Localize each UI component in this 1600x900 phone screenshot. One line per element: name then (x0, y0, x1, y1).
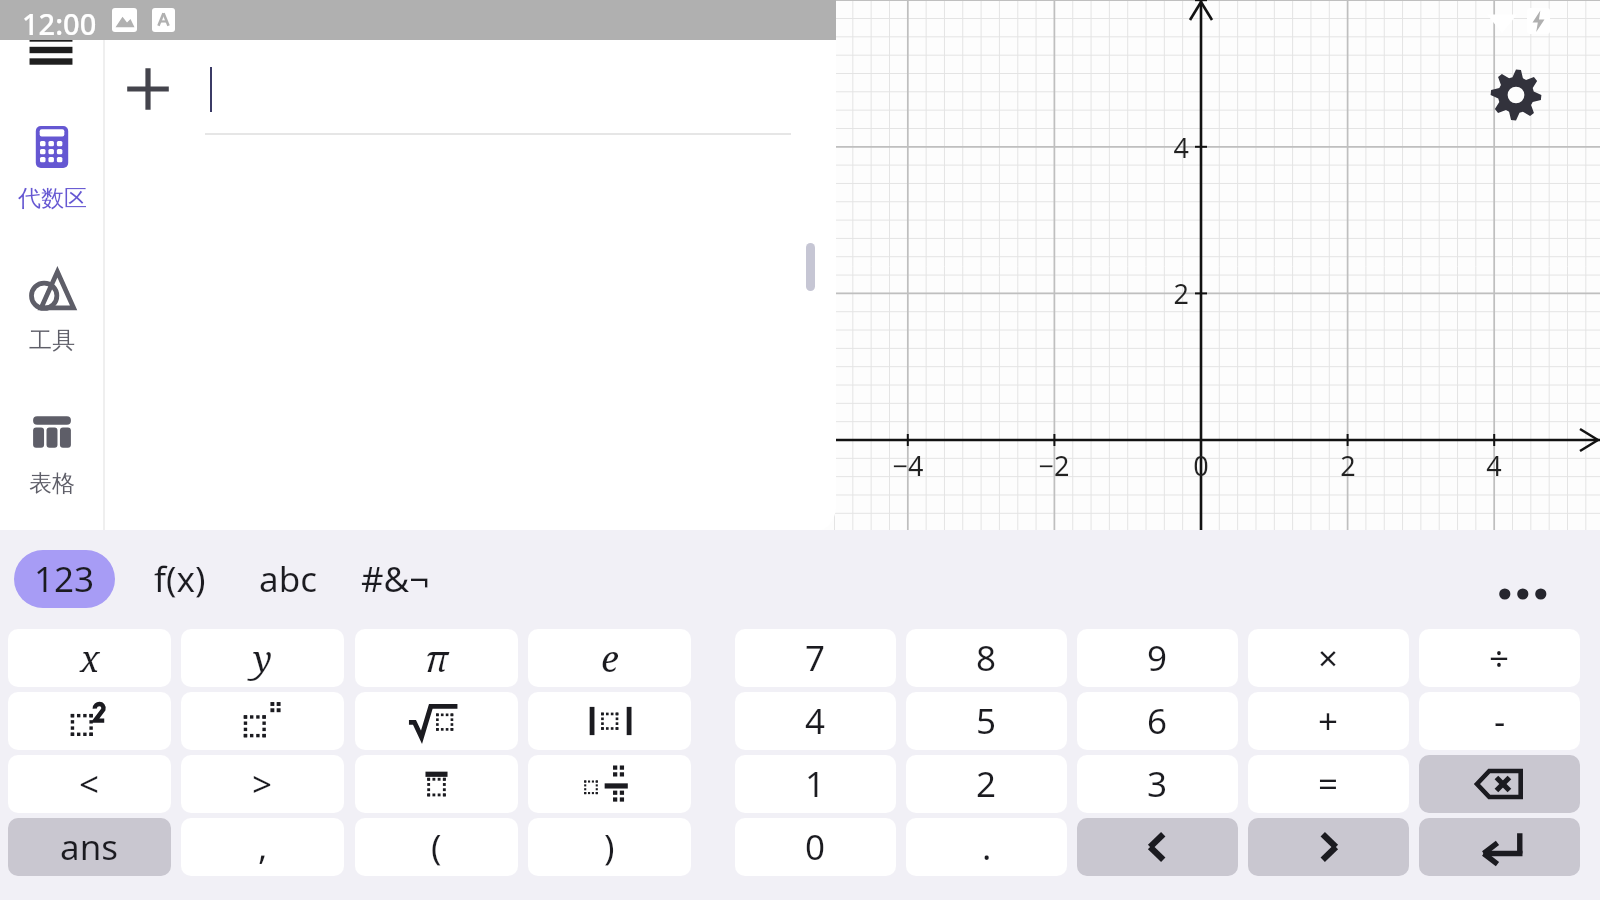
staticText: 工具 (29, 326, 75, 355)
button[interactable]: × (1248, 629, 1409, 687)
staticText: 0 (805, 823, 826, 871)
button[interactable]: 5 (906, 692, 1067, 750)
button[interactable]: Absolute value (528, 692, 691, 750)
staticText: f(x) (154, 555, 206, 603)
button[interactable]: 6 (1077, 692, 1238, 750)
button[interactable]: 2 (906, 755, 1067, 813)
staticText: −2 (1024, 447, 1084, 484)
staticText: . (982, 823, 992, 871)
staticText: 代数区 (18, 184, 87, 213)
button[interactable]: Settings (1489, 68, 1543, 122)
staticText: abc (259, 555, 317, 603)
staticText: 3 (1147, 760, 1168, 808)
staticText: 表格 (29, 469, 75, 498)
button[interactable]: > (181, 755, 344, 813)
staticText: 4 (805, 697, 826, 745)
button[interactable]: 4 (735, 692, 896, 750)
staticText: 9 (1147, 634, 1168, 682)
staticText: 2 (1129, 275, 1189, 312)
button[interactable]: ÷ (1419, 629, 1580, 687)
button[interactable]: - (1419, 692, 1580, 750)
button[interactable]: = (1248, 755, 1409, 813)
button[interactable]: Backspace (1419, 755, 1580, 813)
staticText: 2 (976, 760, 997, 808)
button[interactable]: Enter (1419, 818, 1580, 876)
staticText: 5 (976, 697, 997, 745)
staticText: x (80, 634, 100, 683)
button[interactable]: y (181, 629, 344, 687)
staticText: 4 (1464, 447, 1524, 484)
staticText: 1 (805, 760, 826, 808)
button[interactable]: abc (238, 550, 338, 608)
staticText: 0 (1171, 447, 1231, 484)
button[interactable]: 表格 (0, 399, 104, 511)
staticText: π (425, 634, 449, 683)
staticText: , (258, 823, 268, 871)
staticText: 4 (1129, 129, 1189, 166)
staticText: + (1318, 697, 1339, 745)
button[interactable]: Square root (355, 692, 518, 750)
staticText: ( (431, 823, 442, 871)
button[interactable]: ) (528, 818, 691, 876)
staticText: −4 (878, 447, 938, 484)
staticText: 8 (976, 634, 997, 682)
button[interactable]: . (906, 818, 1067, 876)
staticText: #&¬ (361, 555, 430, 603)
staticText: ) (604, 823, 615, 871)
button[interactable]: 8 (906, 629, 1067, 687)
button[interactable]: π (355, 629, 518, 687)
staticText: 12:00 (22, 4, 97, 43)
button[interactable]: 9 (1077, 629, 1238, 687)
button[interactable]: , (181, 818, 344, 876)
button[interactable]: Menu (22, 26, 80, 74)
staticText: < (79, 760, 100, 808)
button[interactable]: Square (8, 692, 171, 750)
button[interactable]: 7 (735, 629, 896, 687)
button[interactable]: + (1248, 692, 1409, 750)
staticText: - (1494, 697, 1506, 745)
staticText: 123 (34, 555, 95, 603)
button[interactable]: 0 (735, 818, 896, 876)
button[interactable]: 工具 (0, 256, 104, 368)
button[interactable]: 代数区 (0, 114, 104, 226)
staticText: × (1318, 634, 1339, 682)
button[interactable]: Move right (1248, 818, 1409, 876)
button[interactable]: 3 (1077, 755, 1238, 813)
button[interactable]: < (8, 755, 171, 813)
staticText: 7 (805, 634, 826, 682)
staticText: = (1318, 760, 1339, 808)
staticText: ÷ (1489, 634, 1510, 682)
button[interactable]: Power (181, 692, 344, 750)
button[interactable]: f(x) (130, 550, 230, 608)
button[interactable]: x (8, 629, 171, 687)
button[interactable]: Add expression (122, 63, 174, 115)
button[interactable]: e (528, 629, 691, 687)
staticText: > (252, 760, 273, 808)
button[interactable]: Fraction (355, 755, 518, 813)
button[interactable]: #&¬ (345, 550, 445, 608)
staticText: y (253, 634, 273, 683)
button[interactable]: More options (1494, 572, 1554, 616)
button[interactable]: ans (8, 818, 171, 876)
button[interactable]: 123 (14, 550, 115, 608)
button[interactable]: 1 (735, 755, 896, 813)
button[interactable]: Move left (1077, 818, 1238, 876)
staticText: e (601, 634, 619, 683)
staticText: 2 (1318, 447, 1378, 484)
button[interactable]: ( (355, 818, 518, 876)
button[interactable]: Mixed number (528, 755, 691, 813)
staticText: 6 (1147, 697, 1168, 745)
staticText: ans (60, 823, 119, 871)
